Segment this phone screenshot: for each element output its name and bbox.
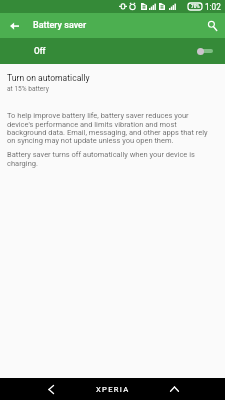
staticText: Battery saver turns off automatically wh… <box>7 150 210 168</box>
staticText: XPERIA <box>96 385 130 394</box>
button[interactable]: Off <box>0 38 225 64</box>
button[interactable]: Back <box>40 378 62 400</box>
staticText: at 15% battery <box>7 85 49 93</box>
staticText: Off <box>34 46 46 56</box>
staticText: To help improve battery life, battery sa… <box>7 111 210 145</box>
button[interactable]: Search <box>200 13 225 38</box>
button[interactable]: XPERIA <box>96 378 130 400</box>
button[interactable]: Turn on automatically <box>0 73 225 93</box>
staticText: 1:02 <box>205 2 221 12</box>
button[interactable]: Recent apps <box>163 378 185 400</box>
staticText: Battery saver <box>33 20 87 31</box>
staticText: 70% <box>191 4 200 9</box>
button[interactable]: Back <box>2 13 27 38</box>
staticText: Turn on automatically <box>7 73 90 83</box>
